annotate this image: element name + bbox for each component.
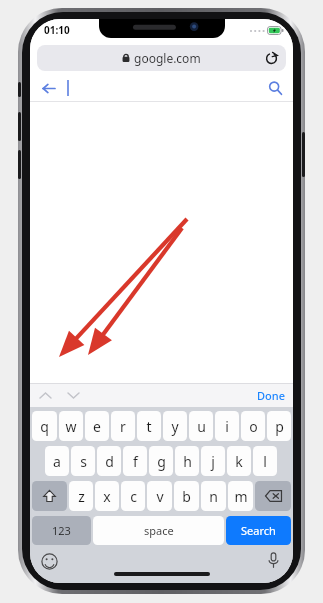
button[interactable]: e [85, 411, 109, 441]
staticText: f [133, 452, 138, 471]
button[interactable]: y [163, 411, 187, 441]
button[interactable]: Reload page [261, 48, 281, 68]
staticText: 01:10 [44, 23, 70, 37]
button[interactable]: k [227, 446, 251, 476]
button[interactable]: Dictation [262, 549, 284, 571]
button[interactable]: google.com [37, 45, 286, 71]
button[interactable]: d [97, 446, 121, 476]
button[interactable]: b [174, 481, 199, 511]
button[interactable]: z [69, 481, 93, 511]
button[interactable]: a [45, 446, 69, 476]
staticText: u [197, 417, 206, 436]
button[interactable]: l [253, 446, 277, 476]
button[interactable]: Search [264, 77, 286, 99]
staticText: Done [257, 388, 285, 403]
button[interactable]: Search [226, 516, 291, 545]
button[interactable]: u [189, 411, 213, 441]
staticText: t [146, 417, 152, 436]
staticText: x [103, 487, 111, 506]
button[interactable]: g [149, 446, 173, 476]
button[interactable]: Previous field [35, 385, 55, 405]
staticText: n [209, 487, 218, 506]
staticText: google.com [134, 50, 201, 66]
staticText: h [183, 452, 192, 471]
staticText: space [144, 523, 174, 538]
staticText: o [249, 417, 258, 436]
staticText: c [130, 487, 137, 506]
staticText: j [211, 452, 215, 471]
staticText: y [171, 417, 179, 436]
button[interactable]: Back [37, 77, 59, 99]
button[interactable]: space [93, 516, 224, 545]
button[interactable]: w [59, 411, 83, 441]
button[interactable]: Shift [32, 481, 67, 511]
button[interactable]: v [147, 481, 172, 511]
button[interactable]: Emoji [38, 550, 60, 572]
button[interactable]: Backspace [255, 481, 291, 511]
staticText: w [65, 417, 77, 436]
button[interactable]: t [137, 411, 161, 441]
staticText: m [234, 487, 248, 506]
staticText: g [157, 452, 166, 471]
staticText: k [235, 452, 243, 471]
staticText: i [225, 417, 229, 436]
button[interactable]: o [241, 411, 265, 441]
button[interactable]: Done [257, 388, 285, 403]
button[interactable]: p [267, 411, 291, 441]
staticText: Search [241, 523, 276, 538]
button[interactable]: n [201, 481, 226, 511]
button[interactable]: s [71, 446, 95, 476]
staticText: d [105, 452, 114, 471]
staticText: z [78, 487, 85, 506]
button[interactable]: x [95, 481, 119, 511]
button[interactable]: m [228, 481, 253, 511]
staticText: p [275, 417, 284, 436]
staticText: r [120, 417, 126, 436]
staticText: l [263, 452, 267, 471]
staticText: s [80, 452, 87, 471]
staticText: e [93, 417, 101, 436]
button[interactable]: 123 [32, 516, 91, 545]
button[interactable]: q [32, 411, 57, 441]
staticText: b [182, 487, 191, 506]
staticText: 123 [52, 523, 71, 538]
button[interactable]: i [215, 411, 239, 441]
button[interactable]: c [121, 481, 145, 511]
button[interactable]: j [201, 446, 225, 476]
staticText: q [40, 417, 49, 436]
button[interactable]: r [111, 411, 135, 441]
button[interactable]: f [123, 446, 147, 476]
staticText: v [156, 487, 164, 506]
staticText: a [53, 452, 61, 471]
button[interactable]: h [175, 446, 199, 476]
button[interactable]: Next field [63, 385, 83, 405]
